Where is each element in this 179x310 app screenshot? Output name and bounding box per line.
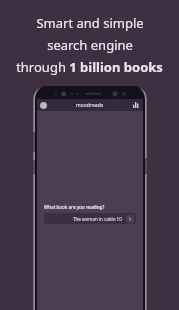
staticText: What book are you reading?: [44, 204, 105, 210]
staticText: moodreads: [76, 102, 104, 109]
button[interactable]: The woman in cabin 10: [44, 213, 136, 224]
staticText: search engine: [47, 36, 133, 54]
staticText: Smart and simple: [36, 14, 144, 32]
button[interactable]: Profile: [40, 102, 47, 109]
button[interactable]: Statistics: [132, 101, 140, 109]
staticText: through 1 billion books: [16, 58, 163, 76]
button[interactable]: Search: [126, 215, 134, 223]
staticText: The woman in cabin 10: [73, 216, 122, 222]
